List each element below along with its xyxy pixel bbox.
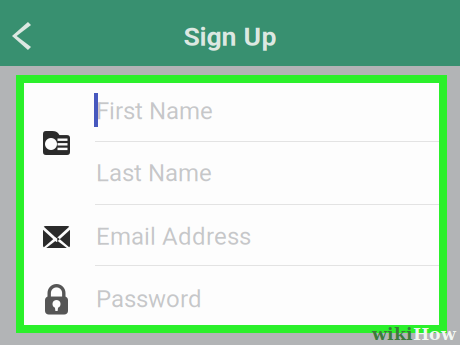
staticText: Sign Up xyxy=(183,21,276,52)
button[interactable]: Back xyxy=(1,21,42,51)
button[interactable]: Password xyxy=(24,266,439,325)
staticText: Last Name xyxy=(96,159,212,187)
staticText: First Name xyxy=(96,97,213,125)
button[interactable]: Email Address xyxy=(24,205,439,265)
staticText: wiki xyxy=(372,324,413,344)
staticText: Email Address xyxy=(96,222,251,250)
button[interactable]: First Name xyxy=(24,83,439,141)
button[interactable]: Last Name xyxy=(24,142,439,204)
staticText: How xyxy=(413,324,456,344)
staticText: Password xyxy=(96,285,202,313)
